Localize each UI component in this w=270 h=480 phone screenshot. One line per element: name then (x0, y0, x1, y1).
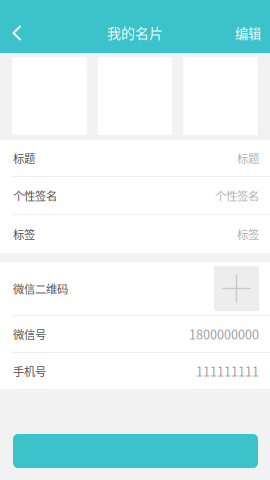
staticText: 111111111 (196, 362, 259, 380)
staticText: 个性签名 (215, 187, 259, 204)
staticText: 1800000000 (189, 325, 259, 343)
button[interactable]: 手机号 (0, 353, 270, 389)
staticText: 编辑 (235, 23, 261, 43)
staticText: 标签 (13, 226, 35, 242)
button[interactable]: 微信二维码 (0, 262, 270, 315)
button[interactable]: 保存 (0, 434, 270, 468)
staticText: 微信号 (13, 326, 46, 342)
button[interactable]: Back (0, 16, 36, 50)
button[interactable]: 编辑 (221, 13, 270, 53)
staticText: 标题 (13, 150, 35, 166)
button[interactable]: 标题 (0, 140, 270, 176)
button[interactable]: 个性签名 (0, 177, 270, 214)
staticText: 微信二维码 (13, 280, 68, 297)
button[interactable]: 标签 (0, 215, 270, 253)
staticText: 我的名片 (107, 22, 163, 43)
staticText: 标签 (237, 226, 259, 242)
staticText: 标题 (237, 150, 259, 166)
staticText: 手机号 (13, 363, 46, 379)
button[interactable]: 微信号 (0, 316, 270, 352)
staticText: 个性签名 (13, 187, 57, 204)
